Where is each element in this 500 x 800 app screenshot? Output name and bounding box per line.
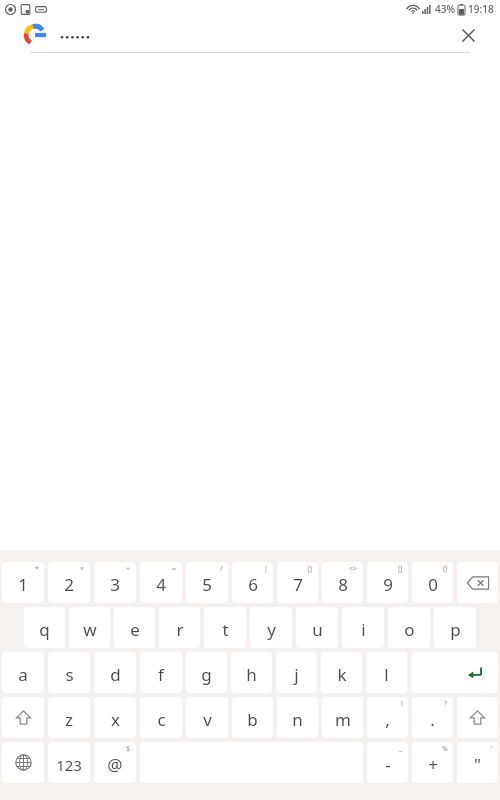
staticText: 5 — [202, 573, 212, 596]
button[interactable]: % — [412, 742, 453, 783]
button[interactable]: () — [412, 562, 453, 603]
staticText: ' — [491, 744, 493, 754]
staticText: × — [80, 564, 85, 574]
button[interactable]: r — [159, 607, 200, 648]
button[interactable]: w — [69, 607, 110, 648]
button[interactable]: <> — [322, 562, 363, 603]
staticText: _ — [399, 744, 403, 754]
button[interactable]: i — [342, 607, 384, 648]
button[interactable]: j — [276, 652, 317, 693]
button[interactable]: d — [94, 652, 136, 693]
button[interactable]: m — [322, 697, 363, 738]
staticText: 4 — [156, 573, 166, 596]
button[interactable]: ? — [412, 697, 453, 738]
staticText: u — [312, 618, 323, 641]
button[interactable]: b — [232, 697, 273, 738]
staticText: <> — [349, 564, 358, 574]
staticText: p — [450, 618, 461, 641]
button[interactable]: Language — [2, 742, 44, 783]
staticText: 19:18 — [468, 2, 494, 16]
button[interactable]: ' — [457, 742, 498, 783]
button[interactable]: y — [250, 607, 292, 648]
staticText: m — [335, 708, 351, 731]
button[interactable]: Backspace — [457, 562, 498, 603]
staticText: t — [222, 618, 229, 641]
button[interactable]: Clear — [454, 21, 482, 49]
staticText: 123 — [56, 755, 82, 775]
staticText: 43% — [435, 2, 455, 16]
staticText: c — [157, 708, 166, 731]
button[interactable]: a — [2, 652, 44, 693]
staticText: ÷ — [126, 564, 131, 574]
staticText: y — [267, 618, 276, 641]
staticText: n — [292, 708, 303, 731]
staticText: $ — [126, 744, 131, 754]
button[interactable]: $ — [94, 742, 136, 783]
button[interactable]: {} — [277, 562, 318, 603]
staticText: () — [443, 564, 448, 574]
button[interactable]: u — [296, 607, 338, 648]
staticText: % — [442, 744, 448, 754]
button[interactable]: | — [232, 562, 273, 603]
staticText: * — [35, 564, 39, 574]
button[interactable]: _ — [367, 742, 408, 783]
staticText: v — [203, 708, 212, 731]
button[interactable]: c — [140, 697, 182, 738]
staticText: e — [130, 618, 140, 641]
button[interactable]: g — [186, 652, 227, 693]
staticText: 2 — [64, 573, 74, 596]
staticText: 1 — [18, 573, 28, 596]
button[interactable]: Google — [24, 24, 46, 46]
staticText: d — [110, 663, 121, 686]
staticText: 3 — [110, 573, 120, 596]
staticText: w — [83, 618, 97, 641]
button[interactable]: k — [321, 652, 362, 693]
staticText: q — [39, 618, 50, 641]
button[interactable]: f — [140, 652, 182, 693]
staticText: h — [246, 663, 257, 686]
button[interactable]: ÷ — [94, 562, 136, 603]
staticText: a — [18, 663, 28, 686]
button[interactable]: × — [48, 562, 90, 603]
button[interactable]: * — [2, 562, 44, 603]
button[interactable]: t — [204, 607, 246, 648]
staticText: o — [404, 618, 415, 641]
staticText: 6 — [248, 573, 258, 596]
button[interactable]: / — [186, 562, 228, 603]
button[interactable]: p — [434, 607, 476, 648]
staticText: s — [65, 663, 74, 686]
button[interactable]: Shift — [2, 697, 44, 738]
staticText: 7 — [293, 573, 303, 596]
button[interactable]: n — [277, 697, 318, 738]
staticText: l — [384, 663, 389, 686]
staticText: , — [385, 708, 390, 731]
staticText: g — [201, 663, 212, 686]
button[interactable]: v — [186, 697, 228, 738]
button[interactable]: 123 — [48, 742, 90, 783]
staticText: f — [158, 663, 164, 686]
button[interactable]: Shift — [457, 697, 498, 738]
button[interactable]: ! — [367, 697, 408, 738]
button[interactable]: Enter — [411, 652, 498, 693]
staticText: b — [247, 708, 258, 731]
staticText: 8 — [338, 573, 348, 596]
staticText: - — [385, 753, 391, 776]
button[interactable]: q — [24, 607, 65, 648]
button[interactable]: e — [114, 607, 155, 648]
staticText: 0 — [428, 573, 438, 596]
button[interactable]: x — [94, 697, 136, 738]
staticText: {} — [307, 564, 313, 574]
button[interactable]: [] — [367, 562, 408, 603]
button[interactable]: l — [366, 652, 407, 693]
button[interactable]: = — [140, 562, 182, 603]
staticText: / — [220, 564, 223, 574]
staticText: z — [65, 708, 73, 731]
staticText: . — [430, 708, 435, 731]
staticText: r — [176, 618, 184, 641]
button[interactable]: z — [48, 697, 90, 738]
button[interactable]: o — [388, 607, 430, 648]
button[interactable]: h — [231, 652, 272, 693]
button[interactable]: s — [48, 652, 90, 693]
staticText: | — [264, 564, 268, 574]
